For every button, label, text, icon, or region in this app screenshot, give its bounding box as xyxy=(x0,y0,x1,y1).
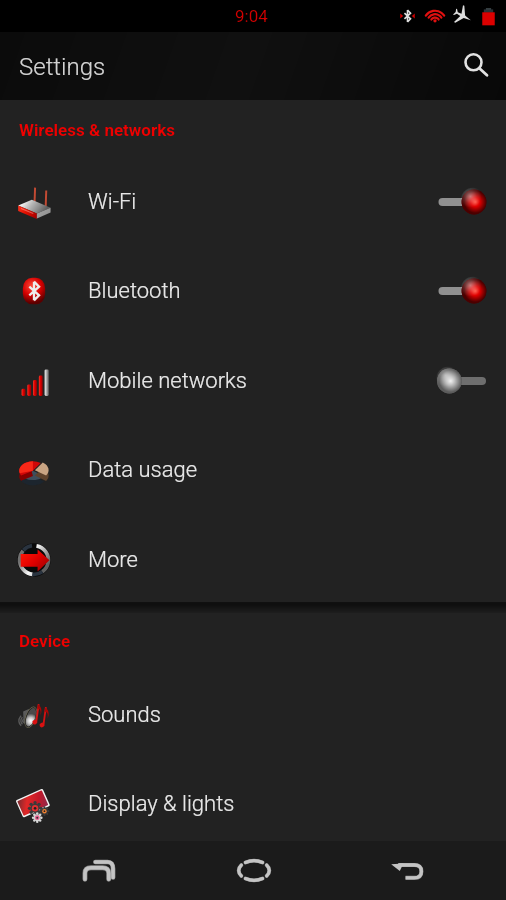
button[interactable]: Back xyxy=(375,841,439,900)
staticText: Settings xyxy=(19,53,106,81)
staticText: More xyxy=(88,547,138,573)
staticText: Bluetooth xyxy=(88,278,181,304)
staticText: Device xyxy=(19,631,71,651)
staticText: Display & lights xyxy=(88,791,235,817)
button[interactable]: Bluetooth xyxy=(0,246,506,335)
button[interactable]: Recents xyxy=(67,841,131,900)
staticText: Wireless & networks xyxy=(19,120,175,140)
button[interactable]: Search xyxy=(446,32,502,100)
button[interactable]: Display & lights xyxy=(0,759,506,848)
button[interactable]: Data usage xyxy=(0,425,506,514)
button[interactable]: Mobile networks xyxy=(0,336,506,425)
button[interactable]: Wi-Fi xyxy=(0,157,506,246)
button[interactable]: More xyxy=(0,515,506,604)
staticText: Sounds xyxy=(88,702,161,728)
staticText: 9:04 xyxy=(235,6,268,26)
button[interactable]: Home xyxy=(222,841,286,900)
staticText: Mobile networks xyxy=(88,368,247,394)
staticText: Wi-Fi xyxy=(88,189,137,215)
staticText: Data usage xyxy=(88,457,198,483)
button[interactable]: Sounds xyxy=(0,670,506,759)
